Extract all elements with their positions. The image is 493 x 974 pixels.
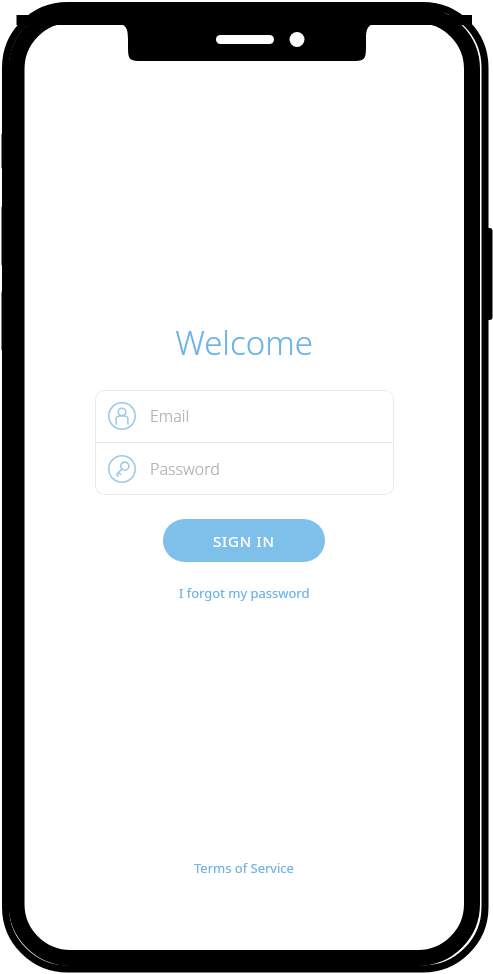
staticText: Password [150,458,220,480]
button[interactable]: Password [95,443,394,495]
staticText: SIGN IN [213,531,275,551]
button[interactable]: I forgot my password [173,581,316,605]
button[interactable]: Email [95,390,394,442]
staticText: Email [150,405,190,427]
button[interactable]: SIGN IN [163,519,325,562]
button[interactable]: Terms of Service [188,856,300,880]
staticText: I forgot my password [179,584,310,602]
staticText: Terms of Service [194,859,294,877]
other: Email [108,402,136,430]
other: Password [108,455,136,483]
staticText: Welcome [175,320,313,365]
